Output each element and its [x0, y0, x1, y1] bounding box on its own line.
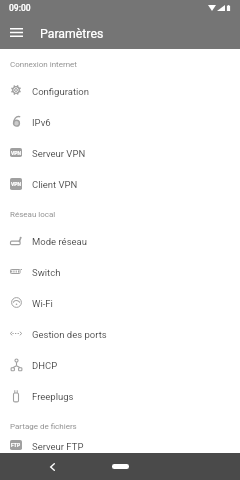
- staticText: Wi-Fi: [32, 298, 53, 309]
- button[interactable]: FTP: [0, 437, 240, 453]
- button[interactable]: VPN: [0, 168, 240, 199]
- staticText: Réseau local: [10, 210, 56, 219]
- staticText: Freeplugs: [32, 391, 74, 402]
- staticText: Serveur FTP: [32, 441, 84, 452]
- button[interactable]: Gestion des ports: [0, 318, 240, 349]
- staticText: 09:00: [9, 3, 31, 13]
- button[interactable]: Wi-Fi: [0, 287, 240, 318]
- staticText: Mode réseau: [32, 236, 87, 247]
- button[interactable]: IPv6: [0, 106, 240, 137]
- staticText: DHCP: [32, 360, 58, 371]
- staticText: Gestion des ports: [32, 329, 107, 340]
- staticText: FTP: [11, 442, 21, 448]
- staticText: Paramètres: [40, 27, 104, 41]
- button[interactable]: Configuration: [0, 75, 240, 106]
- staticText: VPN: [11, 181, 22, 187]
- staticText: Configuration: [32, 86, 89, 97]
- staticText: Connexion internet: [10, 60, 77, 69]
- button[interactable]: Mode réseau: [0, 225, 240, 256]
- staticText: Serveur VPN: [32, 148, 86, 159]
- button[interactable]: Freeplugs: [0, 380, 240, 411]
- button[interactable]: Home: [112, 464, 129, 469]
- staticText: Switch: [32, 267, 61, 278]
- button[interactable]: VPN: [0, 137, 240, 168]
- button[interactable]: Switch: [0, 256, 240, 287]
- staticText: Client VPN: [32, 179, 78, 190]
- staticText: VPN: [11, 150, 22, 156]
- button[interactable]: Back: [44, 459, 60, 475]
- button[interactable]: Menu: [4, 20, 29, 45]
- button[interactable]: DHCP: [0, 349, 240, 380]
- staticText: Partage de fichiers: [10, 422, 77, 431]
- staticText: IPv6: [32, 117, 51, 128]
